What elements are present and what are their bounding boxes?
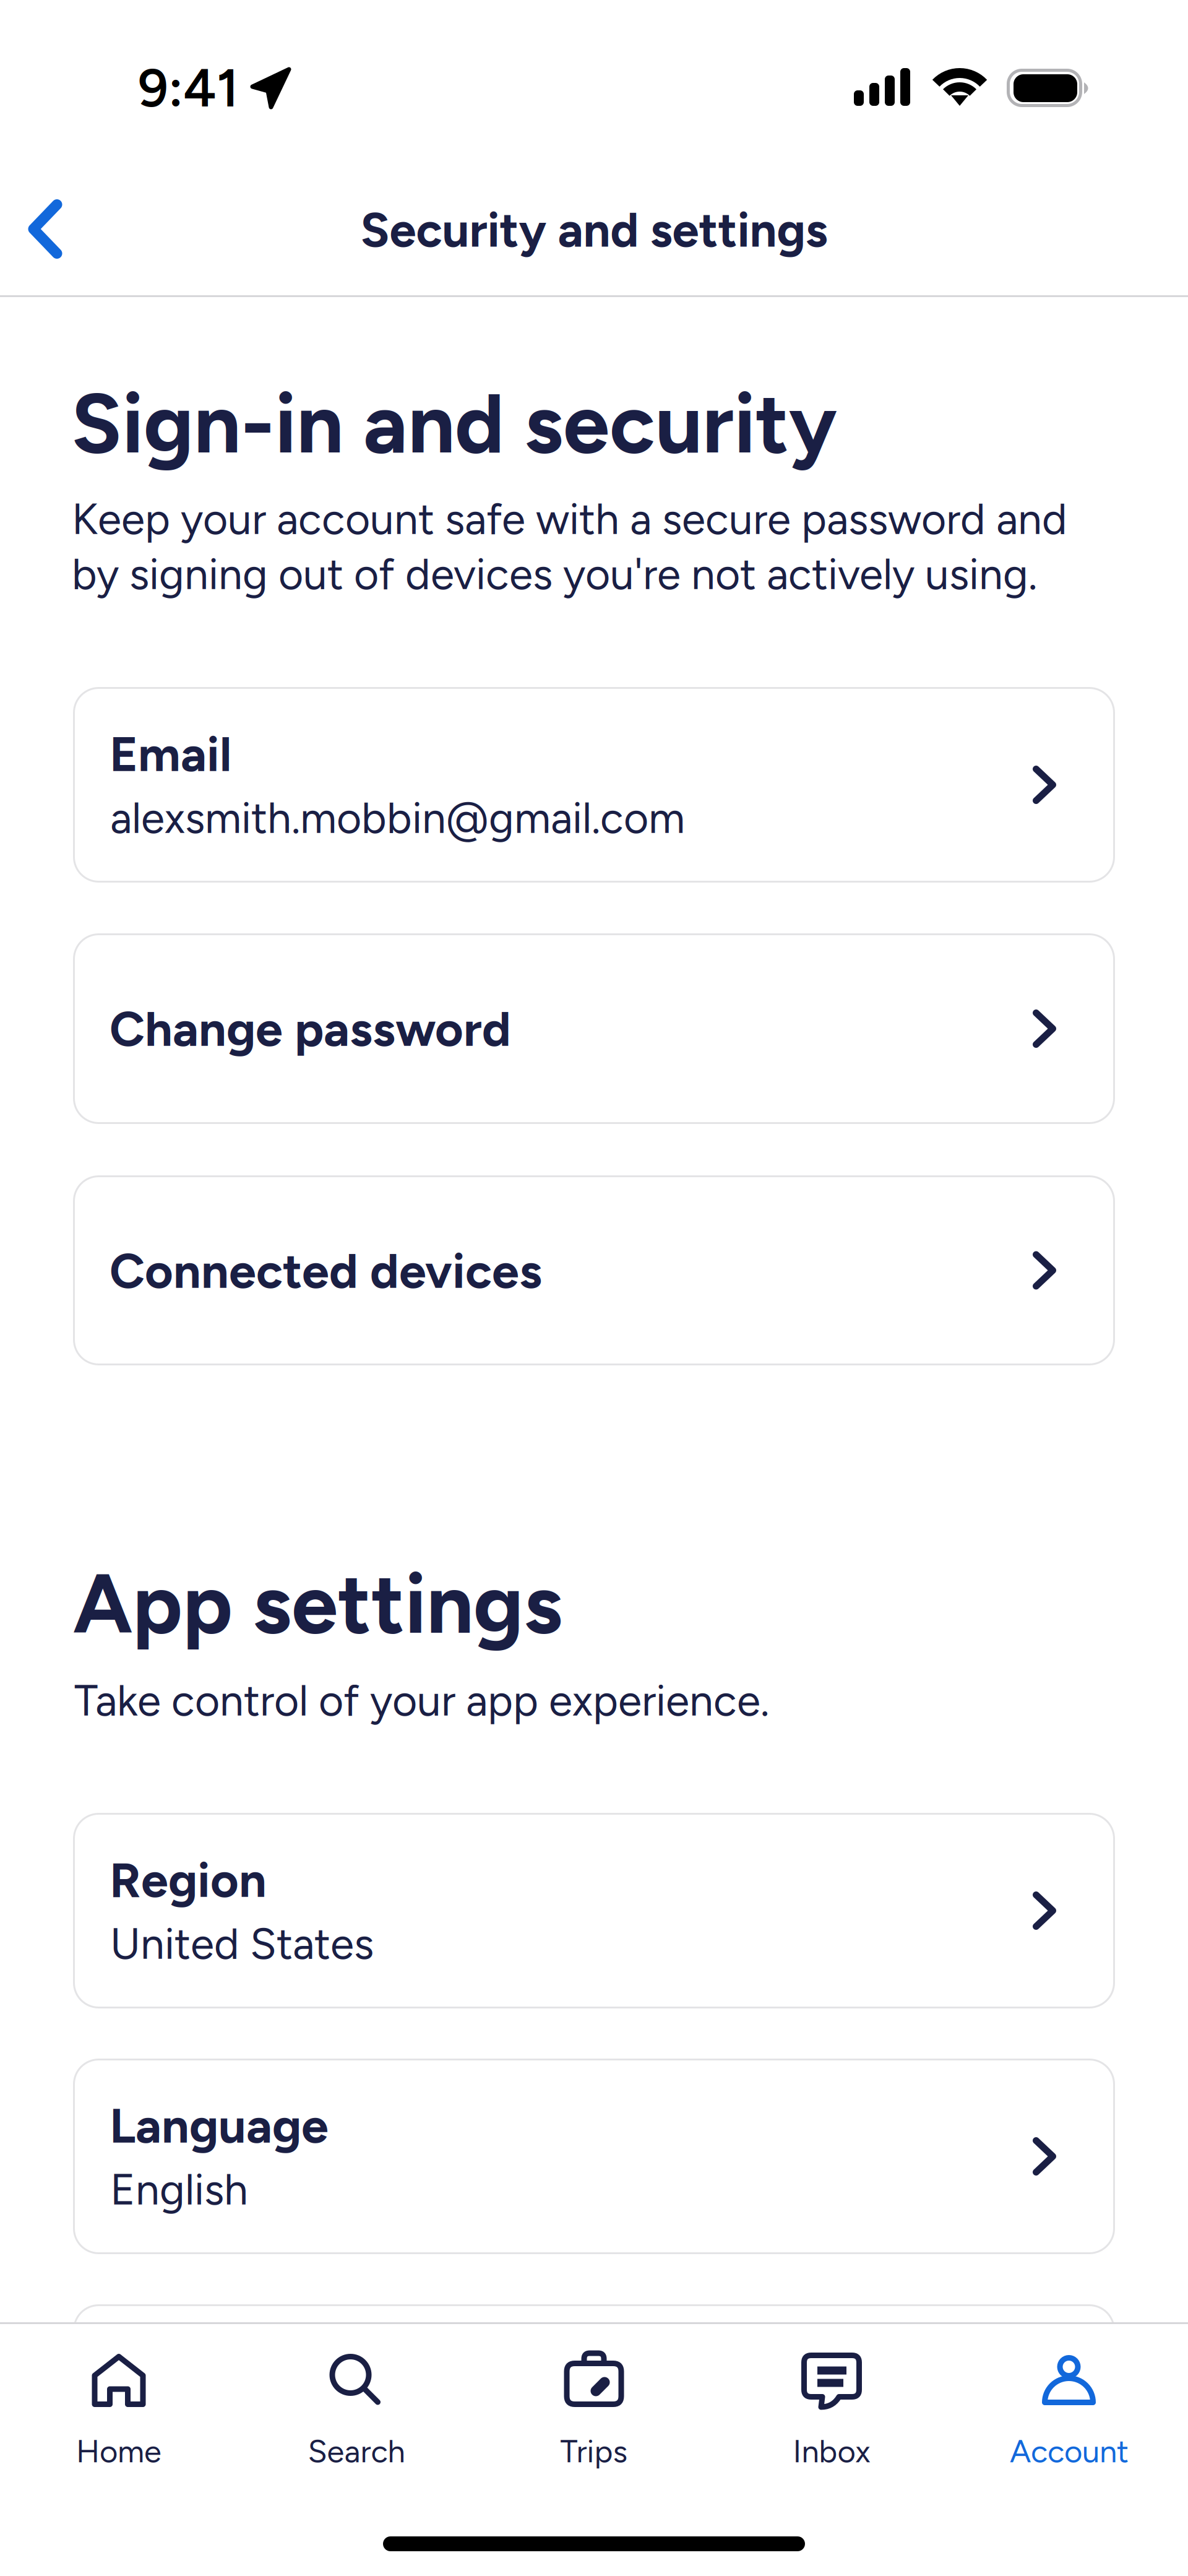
staticText: Keep your account safe with a secure pas… (72, 491, 1067, 602)
button[interactable]: Trips (475, 2324, 713, 2477)
staticText: Security and settings (360, 201, 828, 259)
staticText: Trips (560, 2432, 628, 2470)
staticText: Inbox (793, 2432, 870, 2470)
button[interactable]: Email (73, 687, 1115, 883)
staticText: Email (110, 725, 231, 783)
button[interactable]: Search (238, 2324, 475, 2477)
staticText: Notifications (110, 2371, 405, 2429)
button[interactable]: Region (73, 1813, 1115, 2008)
button[interactable]: Account (950, 2324, 1188, 2477)
button[interactable]: Change password (73, 933, 1115, 1124)
staticText: Take control of your app experience. (74, 1673, 769, 1728)
staticText: alexsmith.mobbin@gmail.com (110, 792, 685, 844)
button[interactable]: Back (0, 170, 90, 288)
button[interactable]: Inbox (713, 2324, 950, 2477)
button[interactable]: Connected devices (73, 1175, 1115, 1365)
staticText: English (110, 2164, 248, 2215)
staticText: Connected devices (110, 1242, 542, 1300)
staticText: Sign-in and security (71, 373, 837, 473)
button[interactable]: Notifications (73, 2304, 1115, 2495)
staticText: United States (110, 1918, 374, 1970)
button[interactable]: Home (0, 2324, 238, 2477)
staticText: Home (76, 2432, 161, 2470)
staticText: Region (110, 1851, 267, 1909)
button[interactable]: Language (73, 2059, 1115, 2254)
staticText: Search (308, 2432, 405, 2470)
staticText: Change password (110, 1000, 511, 1058)
staticText: Language (110, 2096, 329, 2155)
staticText: Account (1010, 2432, 1129, 2470)
staticText: App settings (73, 1554, 562, 1654)
staticText: 9:41 (138, 56, 239, 120)
